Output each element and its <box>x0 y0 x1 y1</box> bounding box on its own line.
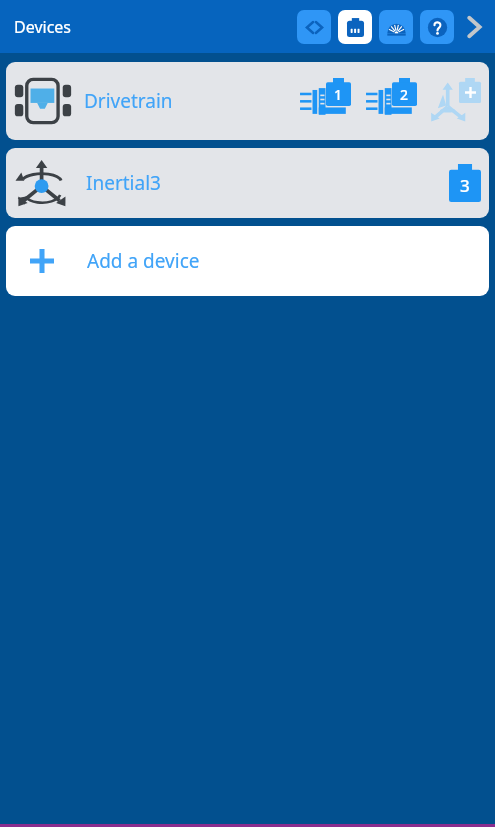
button[interactable]: Inertial3 <box>6 148 489 218</box>
button[interactable]: Drivetrain <box>6 62 489 140</box>
button[interactable]: 2 <box>365 78 417 124</box>
staticText: 1 <box>334 85 343 104</box>
staticText: 2 <box>400 85 409 104</box>
button[interactable]: Add inertial sensor <box>429 78 481 124</box>
staticText: Inertial3 <box>86 170 161 196</box>
staticText: Drivetrain <box>84 88 173 114</box>
button[interactable]: Add a device <box>6 226 489 296</box>
button[interactable]: 1 <box>299 78 351 124</box>
staticText: Add a device <box>87 248 200 274</box>
button[interactable]: Help <box>420 10 454 44</box>
staticText: Devices <box>14 16 72 38</box>
button[interactable]: Devices <box>338 10 372 44</box>
staticText: 3 <box>460 174 470 197</box>
button[interactable]: Dashboard <box>379 10 413 44</box>
button[interactable]: Next <box>456 9 492 45</box>
button[interactable]: Code <box>297 10 331 44</box>
